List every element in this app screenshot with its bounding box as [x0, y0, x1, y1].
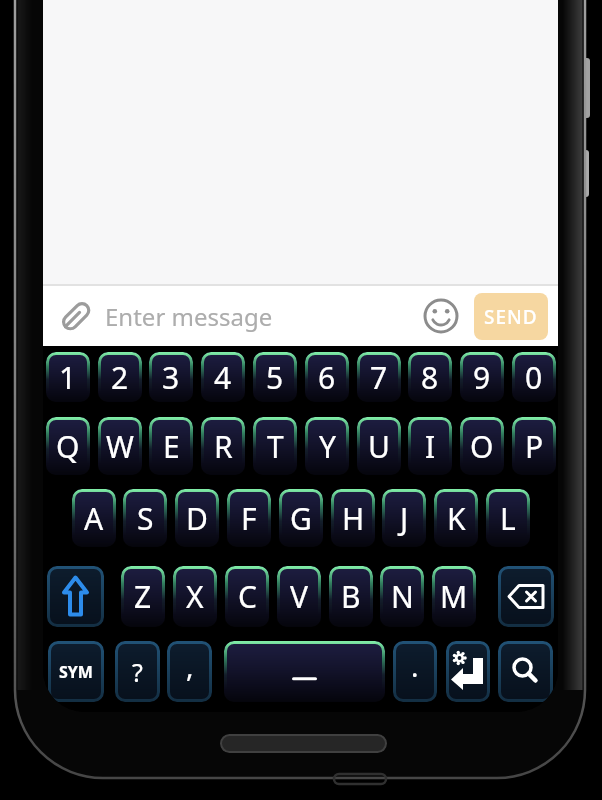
staticText: Q: [56, 426, 80, 467]
staticText: 9: [473, 357, 491, 398]
button[interactable]: 6: [305, 352, 349, 402]
staticText: U: [368, 426, 390, 467]
staticText: 7: [370, 357, 388, 398]
button[interactable]: 8: [408, 352, 452, 402]
button[interactable]: E: [149, 417, 193, 475]
button[interactable]: 3: [149, 352, 193, 402]
staticText: 4: [214, 357, 232, 398]
staticText: M: [440, 576, 468, 617]
button[interactable]: 7: [357, 352, 401, 402]
button[interactable]: W: [98, 417, 142, 475]
staticText: B: [341, 576, 361, 617]
staticText: 8: [421, 357, 439, 398]
button[interactable]: T: [253, 417, 297, 475]
button[interactable]: H: [331, 489, 375, 547]
button[interactable]: N: [380, 566, 424, 627]
button[interactable]: Y: [305, 417, 349, 475]
button[interactable]: G: [279, 489, 323, 547]
button[interactable]: 5: [253, 352, 297, 402]
staticText: D: [186, 498, 208, 539]
staticText: 1: [59, 357, 77, 398]
button[interactable]: 0: [512, 352, 556, 402]
button[interactable]: SEND: [474, 293, 548, 340]
staticText: G: [290, 498, 312, 539]
staticText: ,: [186, 647, 194, 685]
button[interactable]: .: [393, 641, 437, 702]
button[interactable]: V: [277, 566, 321, 627]
staticText: Enter message: [105, 300, 273, 333]
button[interactable]: K: [434, 489, 478, 547]
staticText: SYM: [59, 661, 93, 683]
staticText: ?: [132, 655, 143, 689]
button[interactable]: J: [382, 489, 426, 547]
staticText: T: [267, 426, 284, 467]
button[interactable]: [446, 641, 490, 702]
staticText: R: [214, 426, 233, 467]
button[interactable]: 4: [201, 352, 245, 402]
button[interactable]: [498, 641, 553, 702]
staticText: W: [106, 426, 134, 467]
staticText: Z: [134, 576, 152, 617]
staticText: E: [163, 426, 180, 467]
staticText: Y: [319, 426, 336, 467]
staticText: SEND: [484, 304, 538, 330]
staticText: 6: [318, 357, 336, 398]
button[interactable]: Z: [121, 566, 165, 627]
staticText: X: [186, 576, 204, 617]
staticText: J: [400, 498, 409, 539]
button[interactable]: [498, 566, 554, 627]
button[interactable]: U: [357, 417, 401, 475]
staticText: L: [500, 498, 516, 539]
button[interactable]: M: [432, 566, 476, 627]
staticText: A: [84, 498, 104, 539]
staticText: C: [238, 576, 257, 617]
staticText: 5: [266, 357, 284, 398]
staticText: K: [447, 498, 466, 539]
button[interactable]: P: [512, 417, 556, 475]
button[interactable]: L: [486, 489, 530, 547]
button[interactable]: R: [201, 417, 245, 475]
staticText: S: [137, 498, 154, 539]
button[interactable]: [224, 641, 385, 702]
staticText: .: [411, 647, 419, 685]
button[interactable]: B: [329, 566, 373, 627]
button[interactable]: 1: [46, 352, 90, 402]
button[interactable]: C: [225, 566, 269, 627]
staticText: N: [391, 576, 414, 617]
button[interactable]: X: [173, 566, 217, 627]
staticText: F: [241, 498, 257, 539]
button[interactable]: D: [175, 489, 219, 547]
button[interactable]: ,: [167, 641, 212, 702]
staticText: 3: [162, 357, 180, 398]
staticText: I: [425, 426, 436, 467]
button[interactable]: A: [72, 489, 116, 547]
button[interactable]: ?: [115, 641, 160, 702]
button[interactable]: I: [408, 417, 452, 475]
staticText: 2: [111, 357, 129, 398]
button[interactable]: O: [460, 417, 504, 475]
staticText: V: [290, 576, 308, 617]
staticText: P: [525, 426, 544, 467]
button[interactable]: S: [123, 489, 167, 547]
button[interactable]: [47, 566, 104, 627]
button[interactable]: 9: [460, 352, 504, 402]
staticText: H: [342, 498, 365, 539]
staticText: 0: [525, 357, 543, 398]
button[interactable]: Enter message: [43, 286, 558, 346]
button[interactable]: 2: [98, 352, 142, 402]
button[interactable]: Q: [46, 417, 90, 475]
button[interactable]: SYM: [48, 641, 104, 702]
staticText: O: [470, 426, 494, 467]
button[interactable]: F: [227, 489, 271, 547]
